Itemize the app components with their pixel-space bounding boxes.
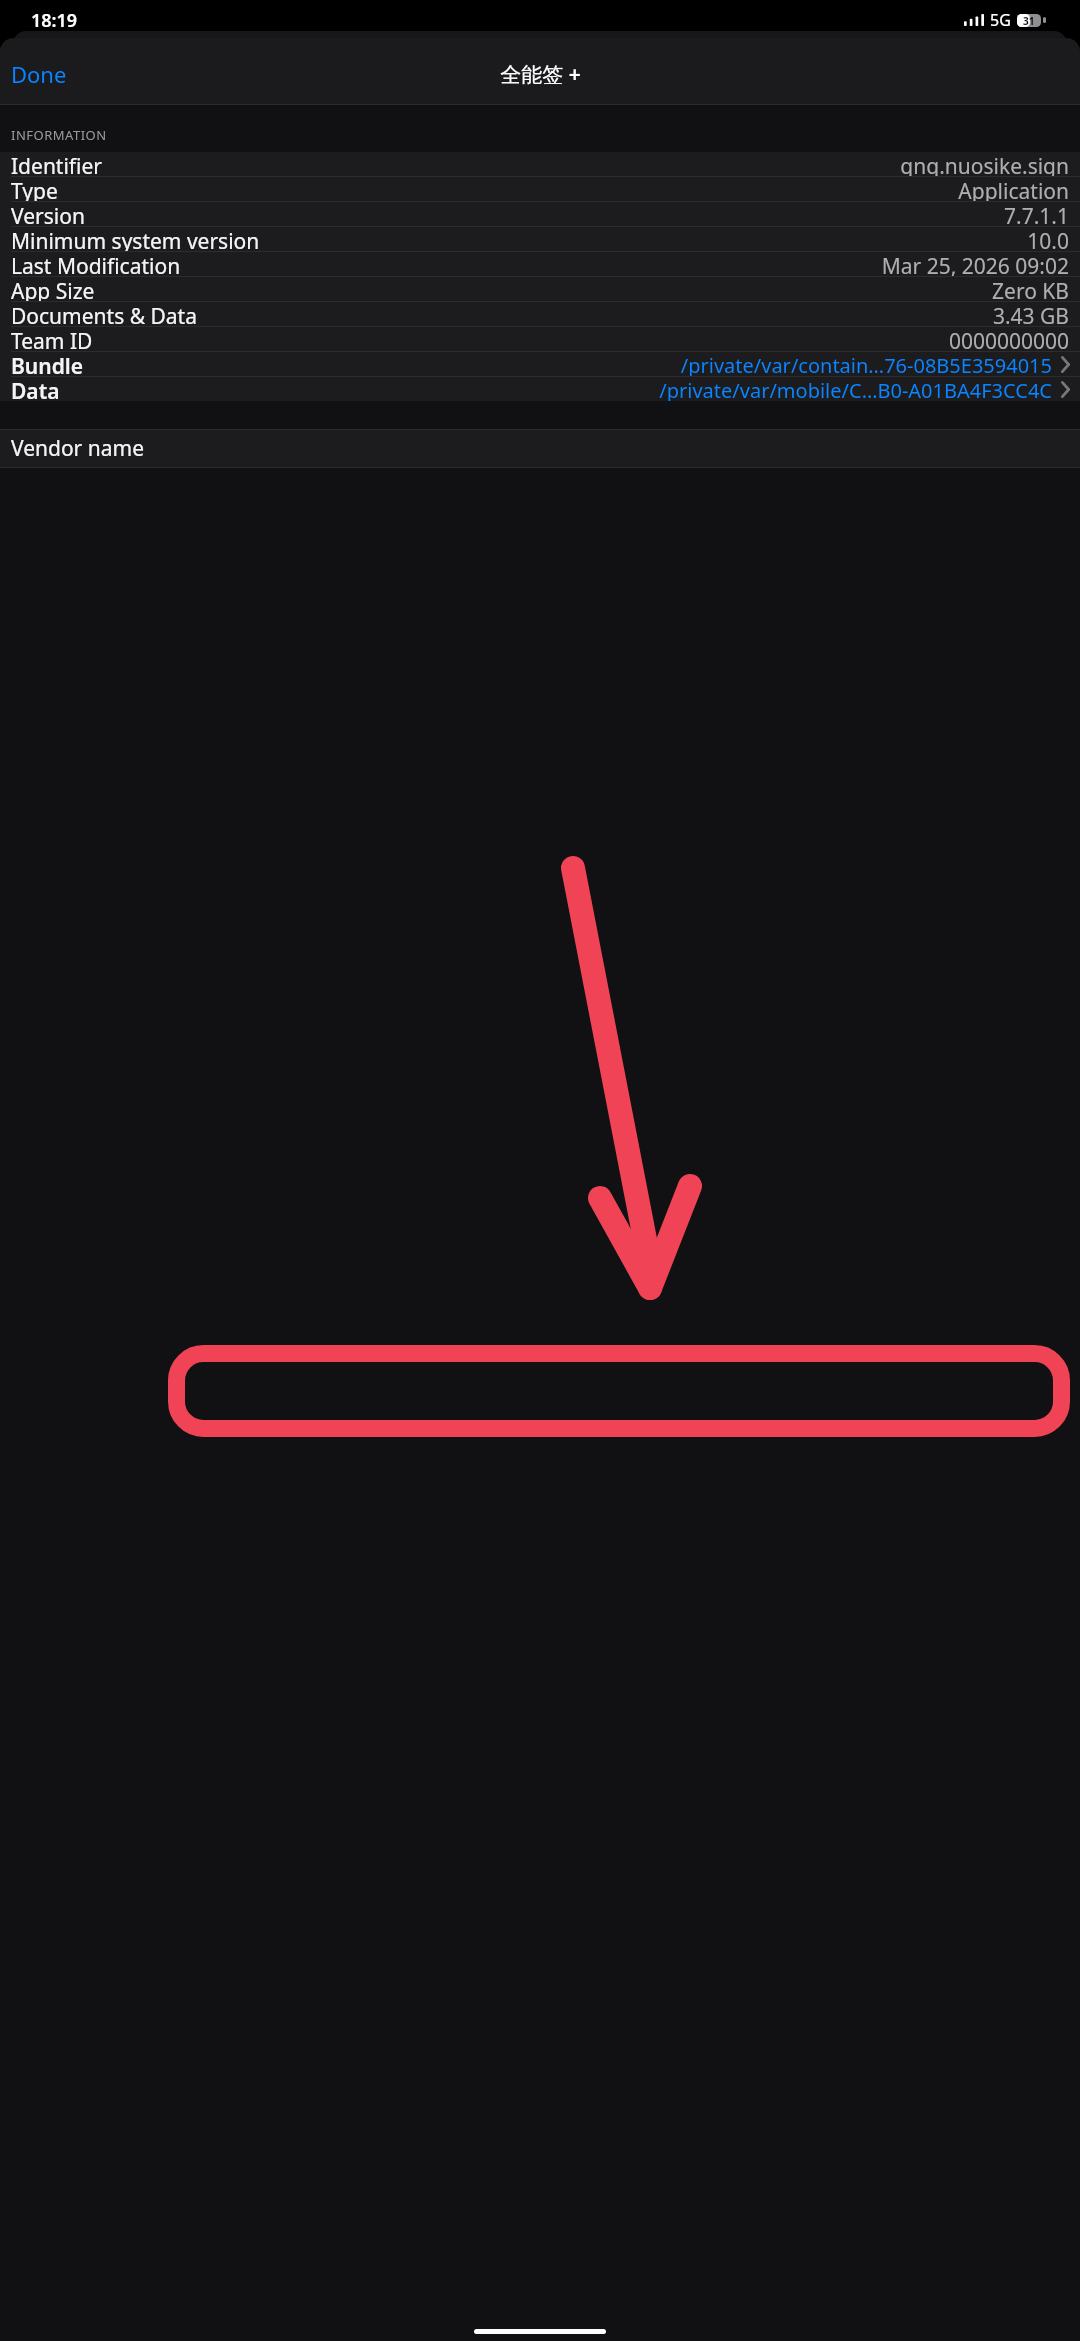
staticText: Documents & Data — [11, 302, 197, 326]
staticText: 31 — [1023, 14, 1035, 27]
button[interactable]: Data — [0, 377, 1080, 401]
staticText: Minimum system version — [11, 227, 260, 251]
staticText: Zero KB — [992, 277, 1069, 301]
button[interactable]: Type — [0, 177, 1080, 201]
staticText: 18:19 — [31, 8, 78, 33]
button[interactable]: Identifier — [0, 152, 1080, 176]
staticText: App Size — [11, 277, 95, 301]
staticText: /private/var/contain…76-08B5E3594015 — [680, 352, 1052, 376]
staticText: 7.7.1.1 — [1004, 202, 1069, 226]
staticText: Application — [958, 177, 1069, 201]
other: Open Data path — [1061, 381, 1070, 398]
staticText: 5G — [990, 9, 1011, 31]
button[interactable]: Documents & Data — [0, 302, 1080, 326]
staticText: /private/var/mobile/C…B0-A01BA4F3CC4C — [659, 377, 1052, 401]
button[interactable]: Bundle — [0, 352, 1080, 376]
staticText: qnq.nuosike.sign — [900, 152, 1069, 176]
button[interactable]: Team ID — [0, 327, 1080, 351]
staticText: 0000000000 — [948, 327, 1069, 351]
staticText: Last Modification — [11, 252, 181, 276]
staticText: Identifier — [11, 152, 103, 176]
button[interactable]: Vendor name — [0, 430, 1080, 467]
staticText: 10.0 — [1027, 227, 1069, 251]
button[interactable]: Done — [0, 52, 78, 96]
staticText: Bundle — [11, 352, 84, 376]
staticText: Mar 25, 2026 09:02 — [881, 252, 1069, 276]
staticText: Done — [11, 59, 67, 89]
staticText: Vendor name — [11, 434, 144, 463]
staticText: Type — [11, 177, 58, 201]
staticText: 3.43 GB — [992, 302, 1069, 326]
button[interactable]: App Size — [0, 277, 1080, 301]
staticText: Data — [11, 377, 60, 401]
staticText: Version — [11, 202, 85, 226]
staticText: Team ID — [11, 327, 93, 351]
button[interactable]: Last Modification — [0, 252, 1080, 276]
button[interactable]: Minimum system version — [0, 227, 1080, 251]
staticText: 全能签 + — [500, 60, 581, 89]
button[interactable]: Version — [0, 202, 1080, 226]
other: Open Bundle path — [1061, 356, 1070, 373]
staticText: INFORMATION — [11, 126, 107, 144]
